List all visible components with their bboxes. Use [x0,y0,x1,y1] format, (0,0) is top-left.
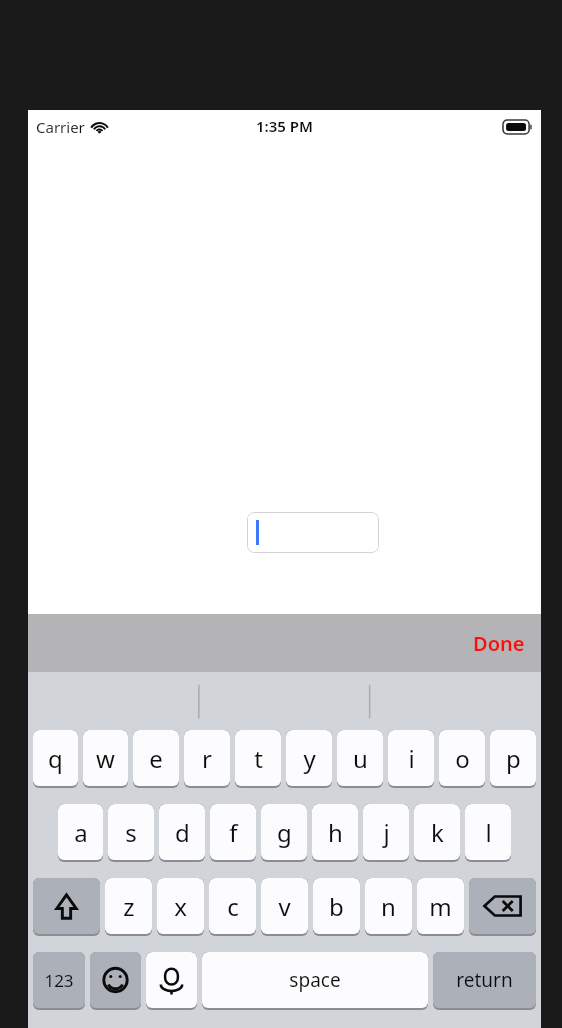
button[interactable]: i [388,730,434,786]
button[interactable]: Emoji [90,952,141,1008]
button[interactable]: f [210,804,256,860]
button[interactable]: v [261,878,308,934]
button[interactable]: y [286,730,332,786]
button[interactable]: a [58,804,103,860]
staticText: w [96,742,115,775]
staticText: v [278,890,291,923]
button[interactable]: n [365,878,412,934]
staticText: p [506,742,521,775]
staticText: c [227,890,239,923]
staticText: y [303,742,316,775]
button[interactable]: z [105,878,152,934]
staticText: e [149,742,163,775]
staticText: i [408,742,415,775]
button[interactable]: p [490,730,536,786]
button[interactable]: x [157,878,204,934]
button[interactable]: c [209,878,256,934]
staticText: 123 [44,969,74,992]
staticText: z [123,890,135,923]
staticText: b [329,890,344,923]
staticText: t [254,742,263,775]
staticText: j [383,816,390,849]
staticText: return [456,967,513,993]
staticText: x [174,890,187,923]
button[interactable]: h [312,804,358,860]
staticText: space [289,967,341,993]
staticText: f [229,816,238,849]
button[interactable]: q [33,730,78,786]
button[interactable]: Backspace [469,878,536,934]
staticText: Done [473,630,525,657]
button[interactable]: l [465,804,511,860]
button[interactable]: b [313,878,360,934]
staticText: g [277,816,292,849]
staticText: d [175,816,190,849]
button[interactable]: d [159,804,205,860]
button[interactable]: g [261,804,307,860]
staticText: m [429,890,452,923]
staticText: n [381,890,396,923]
staticText: 1:35 PM [256,116,313,136]
staticText: a [74,816,88,849]
staticText: q [48,742,63,775]
button[interactable]: e [133,730,179,786]
button[interactable]: Done [457,620,541,667]
button[interactable]: k [414,804,460,860]
button[interactable]: return [433,952,536,1008]
button[interactable]: r [184,730,230,786]
staticText: s [125,816,137,849]
button[interactable]: o [439,730,485,786]
button[interactable]: w [83,730,128,786]
staticText: o [455,742,470,775]
button[interactable]: j [363,804,409,860]
staticText: l [485,816,492,849]
staticText: k [431,816,444,849]
button[interactable]: space [202,952,428,1008]
button[interactable]: s [108,804,154,860]
button[interactable]: m [417,878,464,934]
staticText: Carrier [36,117,85,137]
staticText: u [353,742,368,775]
button[interactable]: 123 [33,952,85,1008]
staticText: r [202,742,212,775]
staticText: h [328,816,343,849]
button[interactable]: Dictation [146,952,197,1008]
button[interactable]: t [235,730,281,786]
button[interactable]: u [337,730,383,786]
button[interactable] [247,512,379,553]
button[interactable]: Shift [33,878,100,934]
